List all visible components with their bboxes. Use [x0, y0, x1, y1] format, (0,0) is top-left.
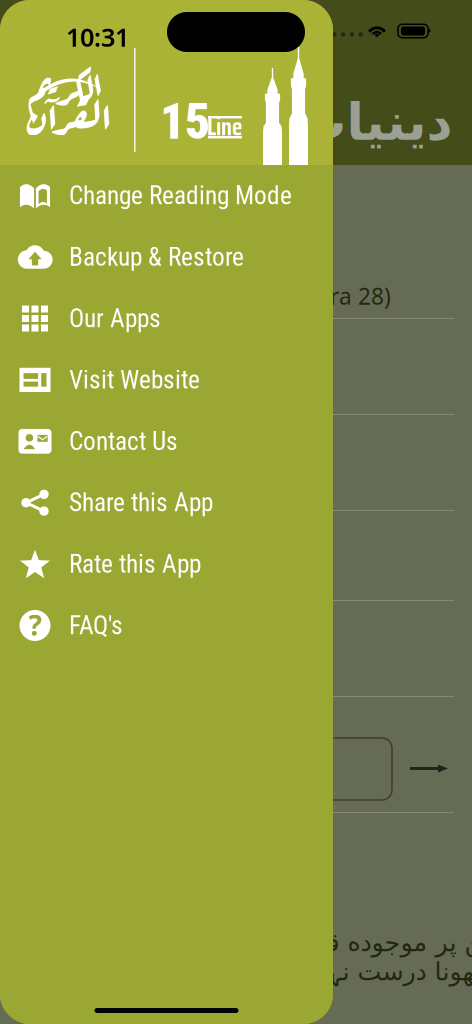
button[interactable]: Our Apps: [0, 288, 333, 349]
button[interactable]: Contact Us: [0, 411, 333, 472]
staticText: Visit Website: [69, 365, 200, 395]
staticText: Backup & Restore: [69, 242, 244, 272]
button[interactable]: Rate this App: [0, 533, 333, 595]
staticText: Rate this App: [69, 549, 201, 579]
staticText: القرآن: [26, 82, 111, 146]
staticText: Contact Us: [69, 426, 178, 456]
button[interactable]: Visit Website: [0, 349, 333, 411]
staticText: وضو چھونا درست نہیں: [300, 957, 472, 986]
staticText: FAQ's: [69, 611, 123, 640]
staticText: الكريم: [26, 57, 102, 115]
staticText: Our Apps: [69, 304, 161, 333]
staticText: (Para 28): [296, 281, 391, 311]
staticText: ?: [28, 606, 41, 643]
staticText: Line: [207, 108, 242, 146]
button[interactable]: Share this App: [0, 472, 333, 533]
staticText: دینیات: [295, 93, 452, 151]
staticText: 15: [160, 93, 210, 151]
button[interactable]: Backup & Restore: [0, 226, 333, 288]
button[interactable]: Change Reading Mode: [0, 165, 333, 226]
button[interactable]: ?: [0, 595, 333, 656]
staticText: اسکرین پر موجوده قرآنی: [278, 928, 472, 957]
staticText: Change Reading Mode: [69, 181, 292, 211]
staticText: Share this App: [69, 488, 213, 518]
staticText: 10:31: [66, 20, 129, 54]
